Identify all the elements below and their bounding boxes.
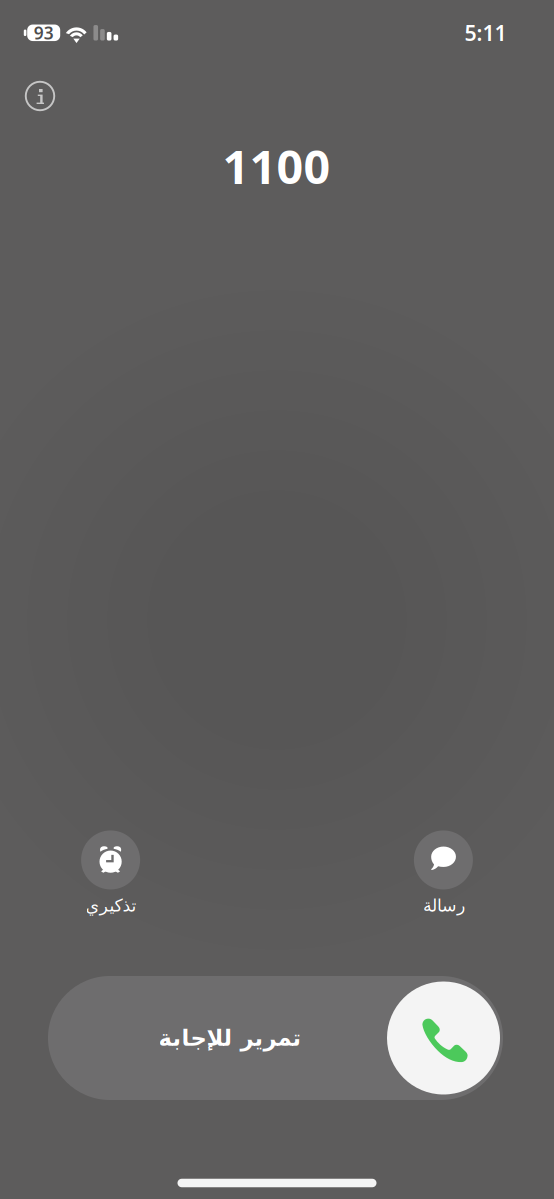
button[interactable]: Call information <box>13 69 67 123</box>
staticText: 5:11 <box>464 19 506 47</box>
button[interactable]: تمرير للإجابة <box>48 976 503 1100</box>
button[interactable]: تذكيري <box>41 830 181 916</box>
staticText: تمرير للإجابة <box>158 1025 301 1051</box>
staticText: تذكيري <box>85 896 136 915</box>
staticText: 1100 <box>222 135 330 197</box>
button[interactable]: رسالة <box>373 830 513 916</box>
staticText: رسالة <box>422 896 464 915</box>
staticText: 93 <box>34 21 54 44</box>
